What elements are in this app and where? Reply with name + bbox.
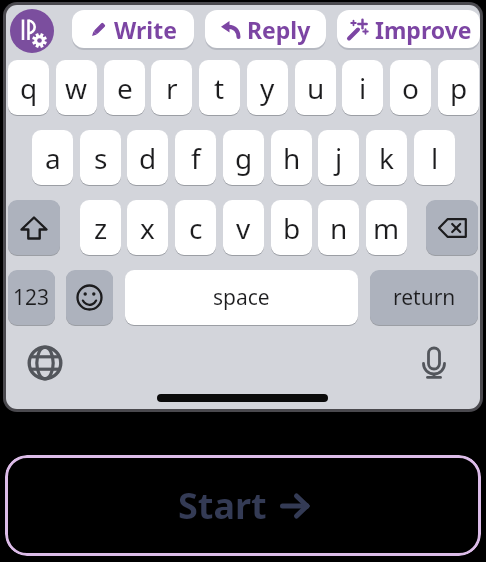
button[interactable]: 123 (8, 270, 55, 325)
button[interactable]: q (8, 60, 49, 115)
staticText: l (431, 139, 439, 177)
staticText: w (65, 69, 88, 107)
button[interactable] (66, 270, 113, 325)
button[interactable]: Reply (205, 10, 326, 48)
staticText: o (402, 69, 419, 107)
staticText: v (236, 209, 251, 247)
button[interactable]: e (104, 60, 145, 115)
button[interactable]: x (127, 200, 168, 255)
button[interactable]: u (295, 60, 336, 115)
staticText: s (94, 139, 108, 177)
button[interactable]: k (366, 130, 407, 185)
staticText: Write (114, 14, 177, 45)
staticText: k (379, 139, 394, 177)
staticText: f (191, 139, 201, 177)
button[interactable]: c (175, 200, 216, 255)
staticText: b (283, 209, 301, 247)
staticText: Reply (247, 14, 311, 45)
staticText: e (117, 69, 133, 107)
button[interactable]: y (247, 60, 288, 115)
button[interactable] (426, 200, 478, 255)
button[interactable]: j (318, 130, 359, 185)
staticText: 123 (13, 283, 50, 312)
staticText: p (450, 69, 468, 107)
button[interactable]: space (125, 270, 358, 325)
button[interactable]: f (175, 130, 216, 185)
staticText: a (45, 139, 61, 177)
button[interactable]: m (366, 200, 407, 255)
staticText: g (235, 139, 253, 177)
button[interactable] (8, 200, 60, 255)
staticText: space (213, 283, 270, 312)
button[interactable]: Write (72, 10, 194, 48)
staticText: t (214, 69, 225, 107)
staticText: Improve (375, 14, 472, 45)
button[interactable]: b (271, 200, 312, 255)
button[interactable]: return (370, 270, 478, 325)
button[interactable]: o (390, 60, 431, 115)
staticText: x (140, 209, 155, 247)
button[interactable]: d (127, 130, 168, 185)
button[interactable]: z (80, 200, 121, 255)
button[interactable]: v (223, 200, 264, 255)
button[interactable]: r (151, 60, 192, 115)
staticText: n (330, 209, 348, 247)
staticText: c (189, 209, 203, 247)
staticText: q (20, 69, 38, 107)
button[interactable]: g (223, 130, 264, 185)
staticText: m (373, 209, 400, 247)
staticText: d (139, 139, 157, 177)
staticText: h (283, 139, 301, 177)
button[interactable]: a (32, 130, 73, 185)
staticText: Start (178, 481, 267, 530)
button[interactable]: w (56, 60, 97, 115)
staticText: i (359, 69, 367, 107)
button[interactable]: Start (5, 455, 481, 556)
staticText: y (260, 69, 275, 107)
staticText: r (166, 69, 178, 107)
button[interactable]: i (342, 60, 383, 115)
button[interactable]: p (438, 60, 479, 115)
staticText: z (94, 209, 108, 247)
button[interactable]: t (199, 60, 240, 115)
staticText: return (393, 283, 456, 312)
button[interactable] (10, 9, 54, 53)
staticText: j (335, 139, 343, 177)
button[interactable]: s (80, 130, 121, 185)
button[interactable]: Improve (337, 10, 480, 48)
button[interactable]: h (271, 130, 312, 185)
button[interactable]: l (414, 130, 455, 185)
button[interactable]: n (318, 200, 359, 255)
staticText: u (307, 69, 325, 107)
